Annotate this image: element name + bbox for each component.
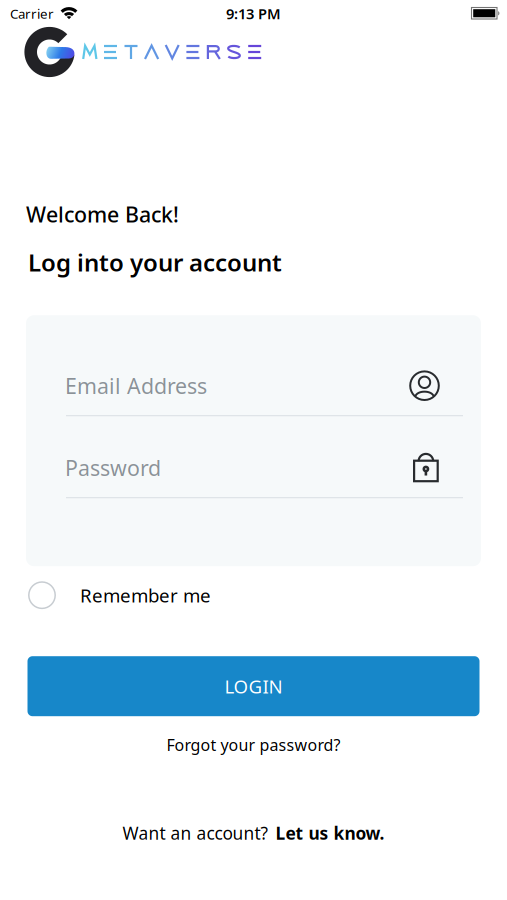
staticText: Welcome Back! bbox=[26, 200, 179, 228]
button[interactable]: Email Address bbox=[26, 367, 481, 404]
staticText: 9:13 PM bbox=[226, 4, 281, 23]
staticText: Forgot your password? bbox=[166, 734, 340, 755]
staticText: Let us know. bbox=[275, 821, 384, 844]
button[interactable]: Remember me bbox=[0, 581, 507, 609]
staticText: Remember me bbox=[80, 583, 211, 608]
staticText: Password bbox=[65, 453, 161, 482]
staticText: Email Address bbox=[65, 371, 207, 400]
button[interactable]: Forgot your password? bbox=[158, 726, 348, 763]
button[interactable]: Password bbox=[26, 449, 481, 486]
staticText: Carrier bbox=[10, 5, 54, 22]
staticText: LOGIN bbox=[224, 674, 282, 699]
button[interactable]: Want an account? bbox=[116, 815, 390, 850]
staticText: Log into your account bbox=[28, 246, 282, 278]
staticText: Want an account? bbox=[122, 821, 268, 844]
button[interactable]: LOGIN bbox=[27, 656, 479, 716]
